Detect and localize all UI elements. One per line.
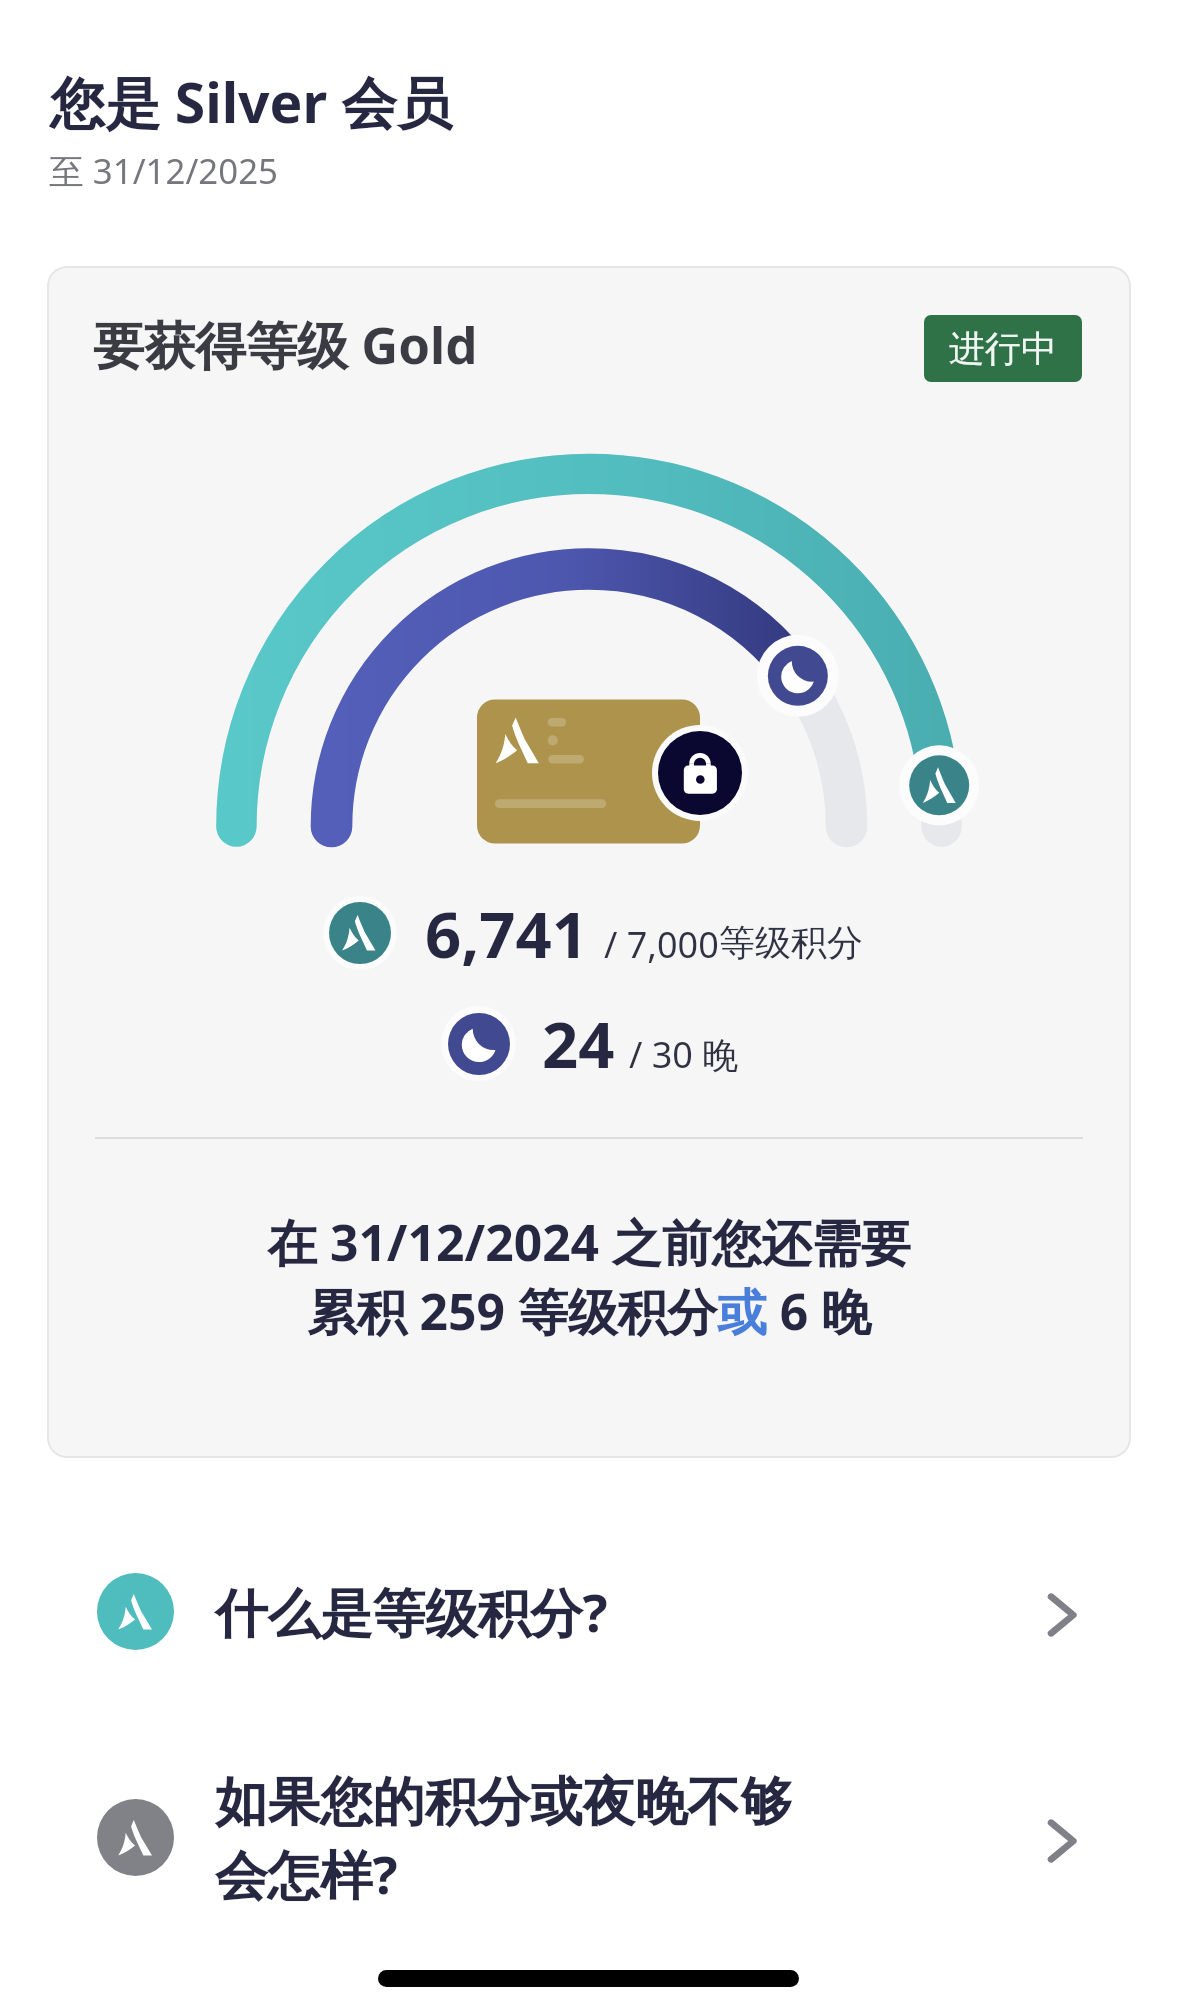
staticText: 6,741 [425, 890, 588, 976]
staticText: 至 31/12/2025 [49, 147, 278, 195]
button[interactable]: 如果您的积分或夜晚不够 会怎样? [0, 1767, 1178, 1979]
other: Open [1040, 1811, 1100, 1871]
staticText: 您是 Silver 会员 [50, 64, 452, 139]
staticText: 要获得等级 Gold [93, 309, 478, 379]
staticText: 如果您的积分或夜晚不够 会怎样? [215, 1769, 793, 1910]
staticText: 等级积分 [719, 920, 863, 965]
staticText: / 30 晚 [629, 1030, 739, 1079]
button[interactable]: 进行中 [924, 315, 1082, 382]
staticText: 什么是等级积分? [215, 1576, 608, 1648]
button[interactable]: 什么是等级积分? [0, 1541, 1178, 1681]
staticText: 在 31/12/2024 之前您还需要 累积 259 等级积分或 6 晚 [47, 1208, 1131, 1345]
staticText: 24 [542, 1000, 615, 1086]
staticText: / 7,000 [604, 920, 719, 969]
staticText: 进行中 [949, 326, 1057, 371]
other: Open [1040, 1585, 1100, 1645]
